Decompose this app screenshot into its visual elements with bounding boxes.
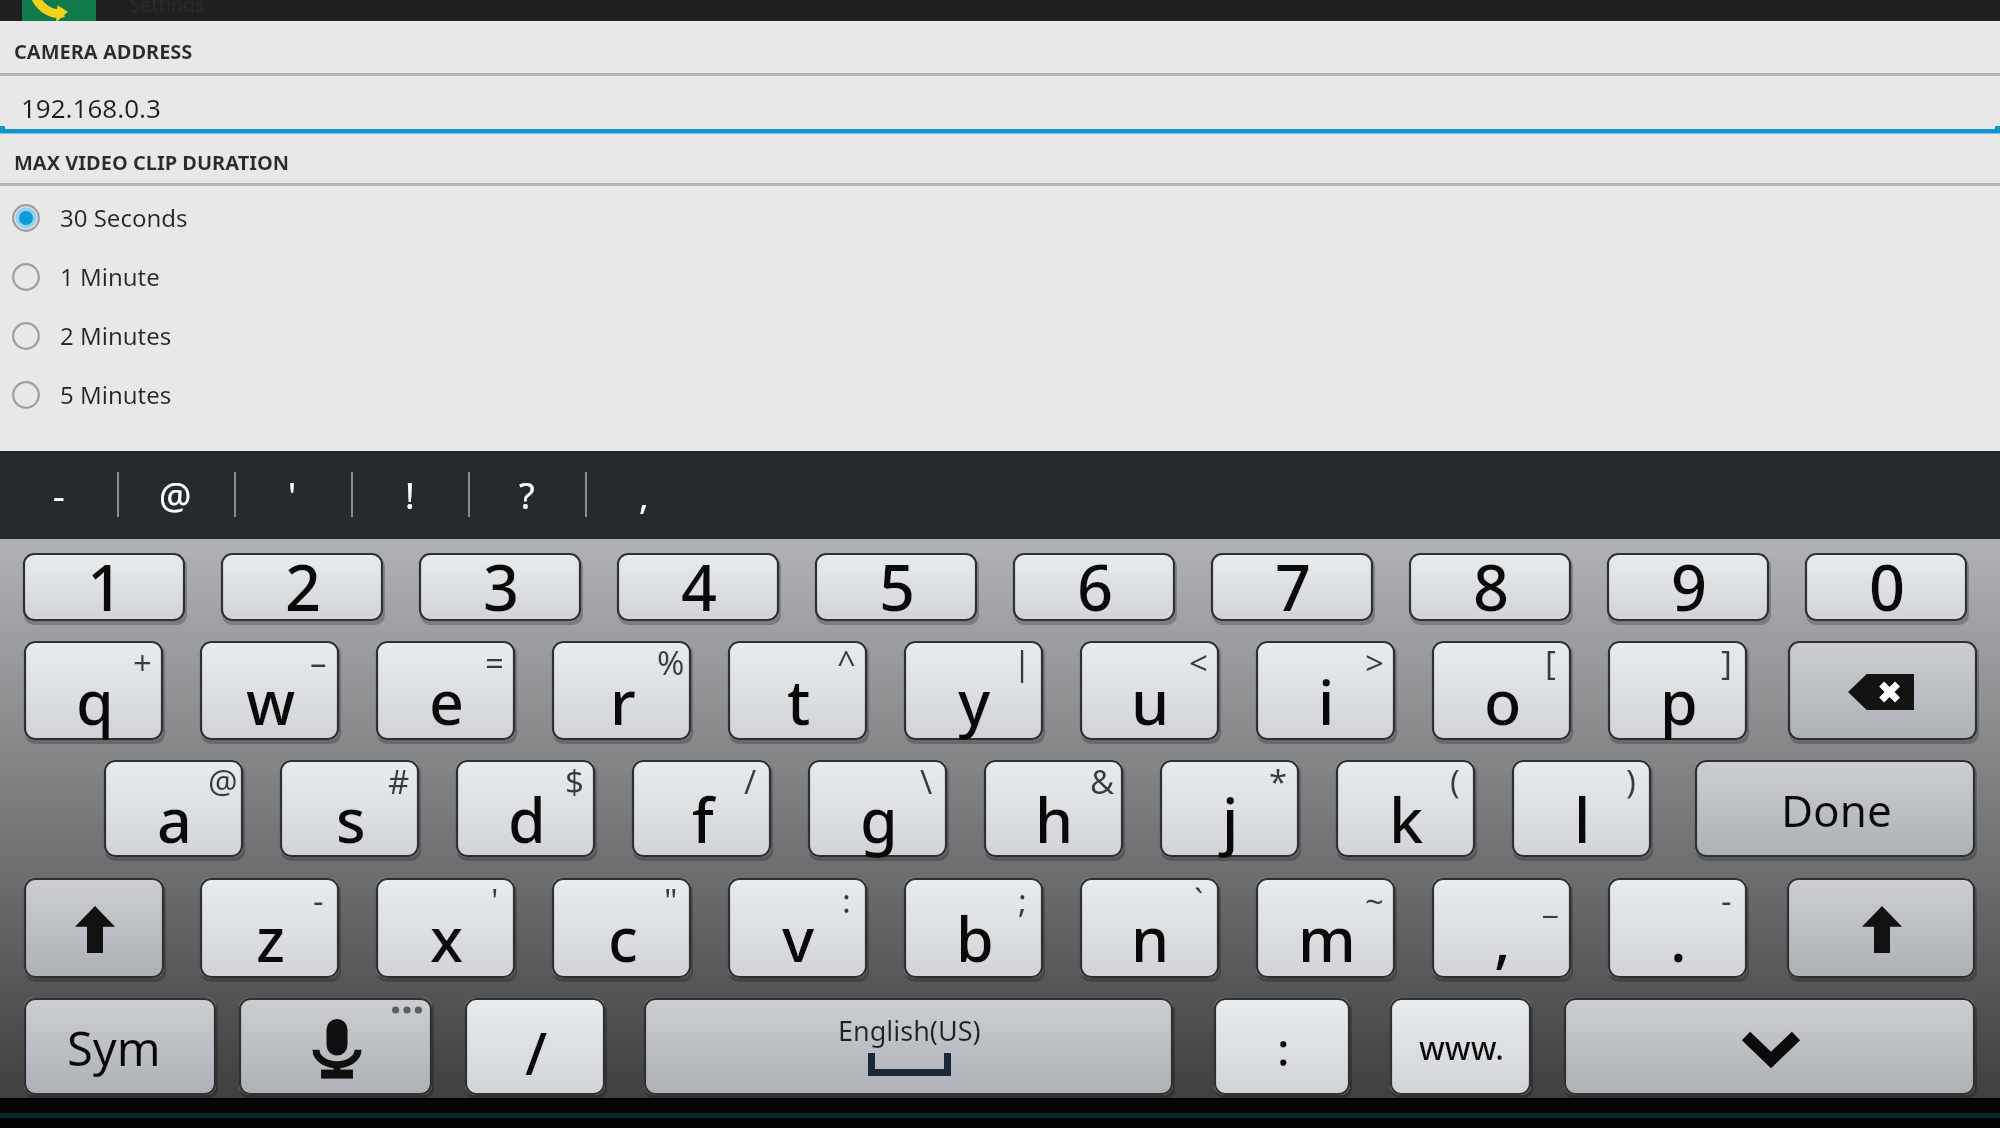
button[interactable]: | <box>904 641 1045 743</box>
staticText: 8 <box>1473 544 1510 615</box>
button[interactable]: ] <box>1608 641 1749 743</box>
button[interactable]: > <box>1256 641 1397 743</box>
button[interactable]: < <box>1080 641 1221 743</box>
button[interactable]: 5 <box>815 553 979 624</box>
button[interactable]: / <box>465 998 607 1098</box>
button[interactable]: ( <box>1336 760 1477 860</box>
button[interactable]: ' <box>376 878 517 981</box>
button[interactable]: 3 <box>419 553 583 624</box>
button[interactable]: * <box>1160 760 1301 860</box>
button[interactable]: 5 Minutes <box>0 365 2000 424</box>
staticText: www. <box>1419 1026 1504 1070</box>
button[interactable]: @ <box>104 760 245 860</box>
button[interactable]: + <box>24 641 165 743</box>
staticText: , <box>1494 897 1511 980</box>
button[interactable]: _ <box>1432 878 1573 981</box>
staticText: f <box>692 778 714 861</box>
button[interactable]: ~ <box>1256 878 1397 981</box>
button[interactable]: Shift <box>24 878 166 981</box>
staticText: | <box>1013 640 1032 685</box>
staticText: ! <box>405 471 415 520</box>
staticText: i <box>1318 660 1335 743</box>
staticText: p <box>1660 660 1698 743</box>
button[interactable]: www. <box>1390 998 1533 1098</box>
button[interactable]: 1 Minute <box>0 247 2000 306</box>
button[interactable]: 192.168.0.3 <box>0 76 2000 132</box>
staticText: – <box>310 640 327 685</box>
staticText: d <box>508 778 546 861</box>
staticText: Done <box>1781 780 1892 840</box>
staticText: ( <box>1450 759 1460 804</box>
button[interactable]: ; <box>904 878 1045 981</box>
button[interactable]: @ <box>117 451 234 539</box>
staticText: ? <box>519 471 535 520</box>
staticText: Settings <box>130 0 204 13</box>
button[interactable]: = <box>376 641 517 743</box>
button[interactable]: 8 <box>1409 553 1573 624</box>
button[interactable]: Sym <box>24 998 218 1098</box>
button[interactable]: 0 <box>1805 553 1969 624</box>
button[interactable]: – <box>200 641 341 743</box>
staticText: z <box>256 897 286 980</box>
button[interactable]: : <box>728 878 869 981</box>
button[interactable]: - <box>200 878 341 981</box>
staticText: ) <box>1626 759 1636 804</box>
button[interactable]: [ <box>1432 641 1573 743</box>
button[interactable]: Voice input <box>239 998 434 1098</box>
button[interactable]: App icon <box>22 0 96 21</box>
staticText: a <box>157 778 192 861</box>
button[interactable]: English(US) <box>644 998 1175 1098</box>
staticText: , <box>639 471 649 520</box>
button[interactable]: 6 <box>1013 553 1177 624</box>
button[interactable]: Hide keyboard <box>1564 998 1977 1098</box>
button[interactable]: Shift <box>1787 878 1977 981</box>
button[interactable]: ? <box>468 451 585 539</box>
staticText: 2 Minutes <box>60 319 172 352</box>
button[interactable]: , <box>585 451 702 539</box>
staticText: e <box>429 660 465 743</box>
button[interactable]: / <box>632 760 773 860</box>
staticText: + <box>133 640 152 685</box>
button[interactable]: 1 <box>23 553 187 624</box>
button[interactable]: - <box>1608 878 1749 981</box>
button[interactable]: \ <box>808 760 949 860</box>
button[interactable]: % <box>552 641 693 743</box>
staticText: y <box>958 660 991 743</box>
button[interactable]: 2 <box>221 553 385 624</box>
staticText: r <box>610 660 636 743</box>
button[interactable]: 7 <box>1211 553 1375 624</box>
staticText: ^ <box>837 640 856 685</box>
staticText: English(US) <box>838 1012 981 1049</box>
button[interactable]: : <box>1214 998 1352 1098</box>
staticText: . <box>1670 897 1687 980</box>
staticText: ~ <box>1365 878 1384 923</box>
button[interactable]: ' <box>234 451 351 539</box>
staticText: 3 <box>483 544 520 615</box>
staticText: j <box>1222 778 1239 861</box>
button[interactable]: 4 <box>617 553 781 624</box>
button[interactable]: # <box>280 760 421 860</box>
staticText: q <box>76 660 114 743</box>
button[interactable]: 9 <box>1607 553 1771 624</box>
button[interactable]: & <box>984 760 1125 860</box>
button[interactable]: 30 Seconds <box>0 188 2000 247</box>
staticText: ' <box>288 471 297 520</box>
button[interactable]: $ <box>456 760 597 860</box>
staticText: w <box>246 660 296 743</box>
staticText: h <box>1035 778 1074 861</box>
staticText: # <box>388 759 410 804</box>
button[interactable]: ) <box>1512 760 1653 860</box>
button[interactable]: Done <box>1695 760 1977 860</box>
button[interactable]: ^ <box>728 641 869 743</box>
button[interactable]: Backspace <box>1788 641 1979 743</box>
button[interactable]: ! <box>351 451 468 539</box>
staticText: m <box>1298 897 1356 980</box>
staticText: 6 <box>1077 544 1114 615</box>
staticText: Sym <box>67 1016 161 1080</box>
button[interactable]: ` <box>1080 878 1221 981</box>
button[interactable]: " <box>552 878 693 981</box>
staticText: < <box>1189 640 1208 685</box>
staticText: MAX VIDEO CLIP DURATION <box>14 149 290 176</box>
button[interactable]: 2 Minutes <box>0 306 2000 365</box>
button[interactable]: - <box>0 451 117 539</box>
